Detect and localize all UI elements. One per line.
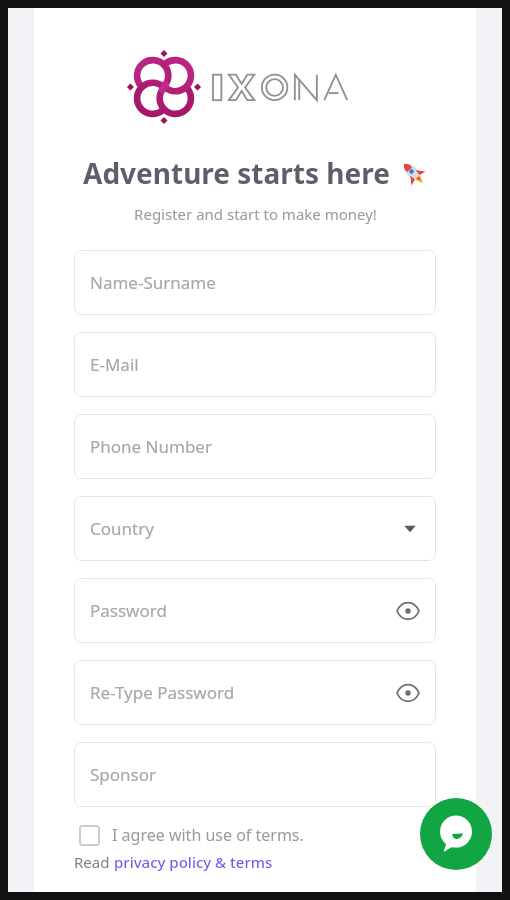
staticText: Phone Number <box>90 435 212 458</box>
button[interactable]: Name-Surname <box>74 250 436 315</box>
other: Show password <box>396 599 420 623</box>
staticText: Read <box>74 852 114 872</box>
other: Show password <box>396 681 420 705</box>
button[interactable]: Country <box>74 496 436 561</box>
staticText: Sponsor <box>90 763 157 786</box>
staticText: Re-Type Password <box>90 681 235 704</box>
staticText: Country <box>90 517 154 540</box>
button[interactable]: I agree with use of terms. <box>74 824 436 846</box>
staticText: Register and start to make money! <box>134 204 377 224</box>
button[interactable]: Open chat <box>420 798 492 870</box>
staticText: Adventure starts here <box>83 154 390 192</box>
button[interactable]: privacy policy & terms <box>114 852 273 872</box>
button[interactable]: E-Mail <box>74 332 436 397</box>
button[interactable]: Sponsor <box>74 742 436 807</box>
button[interactable]: Phone Number <box>74 414 436 479</box>
staticText: Password <box>90 599 167 622</box>
button[interactable]: Re-Type Password <box>74 660 436 725</box>
button[interactable]: Password <box>74 578 436 643</box>
staticText: I agree with use of terms. <box>112 824 304 846</box>
staticText: E-Mail <box>90 353 139 376</box>
staticText: Name-Surname <box>90 271 216 294</box>
staticText: privacy policy & terms <box>114 852 273 872</box>
